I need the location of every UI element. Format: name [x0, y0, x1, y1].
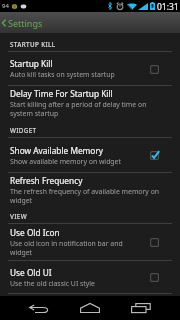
button[interactable]: Unchecked [146, 234, 162, 250]
staticText: Show Available Memory [10, 145, 104, 156]
button[interactable]: Use Old Icon [0, 224, 180, 261]
staticText: Use the old classic UI style [10, 279, 95, 288]
button[interactable]: Unchecked [146, 61, 162, 77]
button[interactable]: Startup Kill [0, 52, 180, 86]
staticText: Auto kill tasks on system startup [10, 70, 115, 79]
staticText: Delay Time For Startup Kill [10, 88, 113, 99]
staticText: Use Old UI [10, 267, 52, 278]
button[interactable]: Recents [116, 296, 166, 320]
staticText: WIDGET [10, 126, 37, 135]
staticText: 01:31 [157, 1, 179, 13]
button[interactable]: Back [14, 296, 64, 320]
staticText: Show available memory on widget [10, 157, 121, 166]
button[interactable]: Show Available Memory [0, 138, 180, 173]
staticText: VIEW [10, 212, 27, 221]
staticText: Use old icon in notification bar and wid… [10, 239, 141, 257]
staticText: Refresh Frequency [10, 175, 83, 186]
button[interactable]: Unchecked [146, 269, 162, 285]
staticText: Use Old Icon [10, 227, 60, 238]
button[interactable]: Refresh Frequency [0, 173, 180, 206]
button[interactable]: Checked [146, 147, 162, 163]
staticText: Start killing after a period of delay ti… [10, 100, 165, 118]
staticText: STARTUP KILL [10, 40, 56, 49]
button[interactable]: Use Old UI [0, 261, 180, 294]
staticText: Settings [8, 17, 43, 29]
staticText: The refresh frequency of available memor… [10, 187, 165, 205]
button[interactable]: Delay Time For Startup Kill [0, 86, 180, 120]
staticText: 94 [2, 2, 9, 10]
button[interactable]: Settings [0, 12, 49, 33]
staticText: Startup Kill [10, 58, 53, 69]
button[interactable]: Home [65, 296, 115, 320]
